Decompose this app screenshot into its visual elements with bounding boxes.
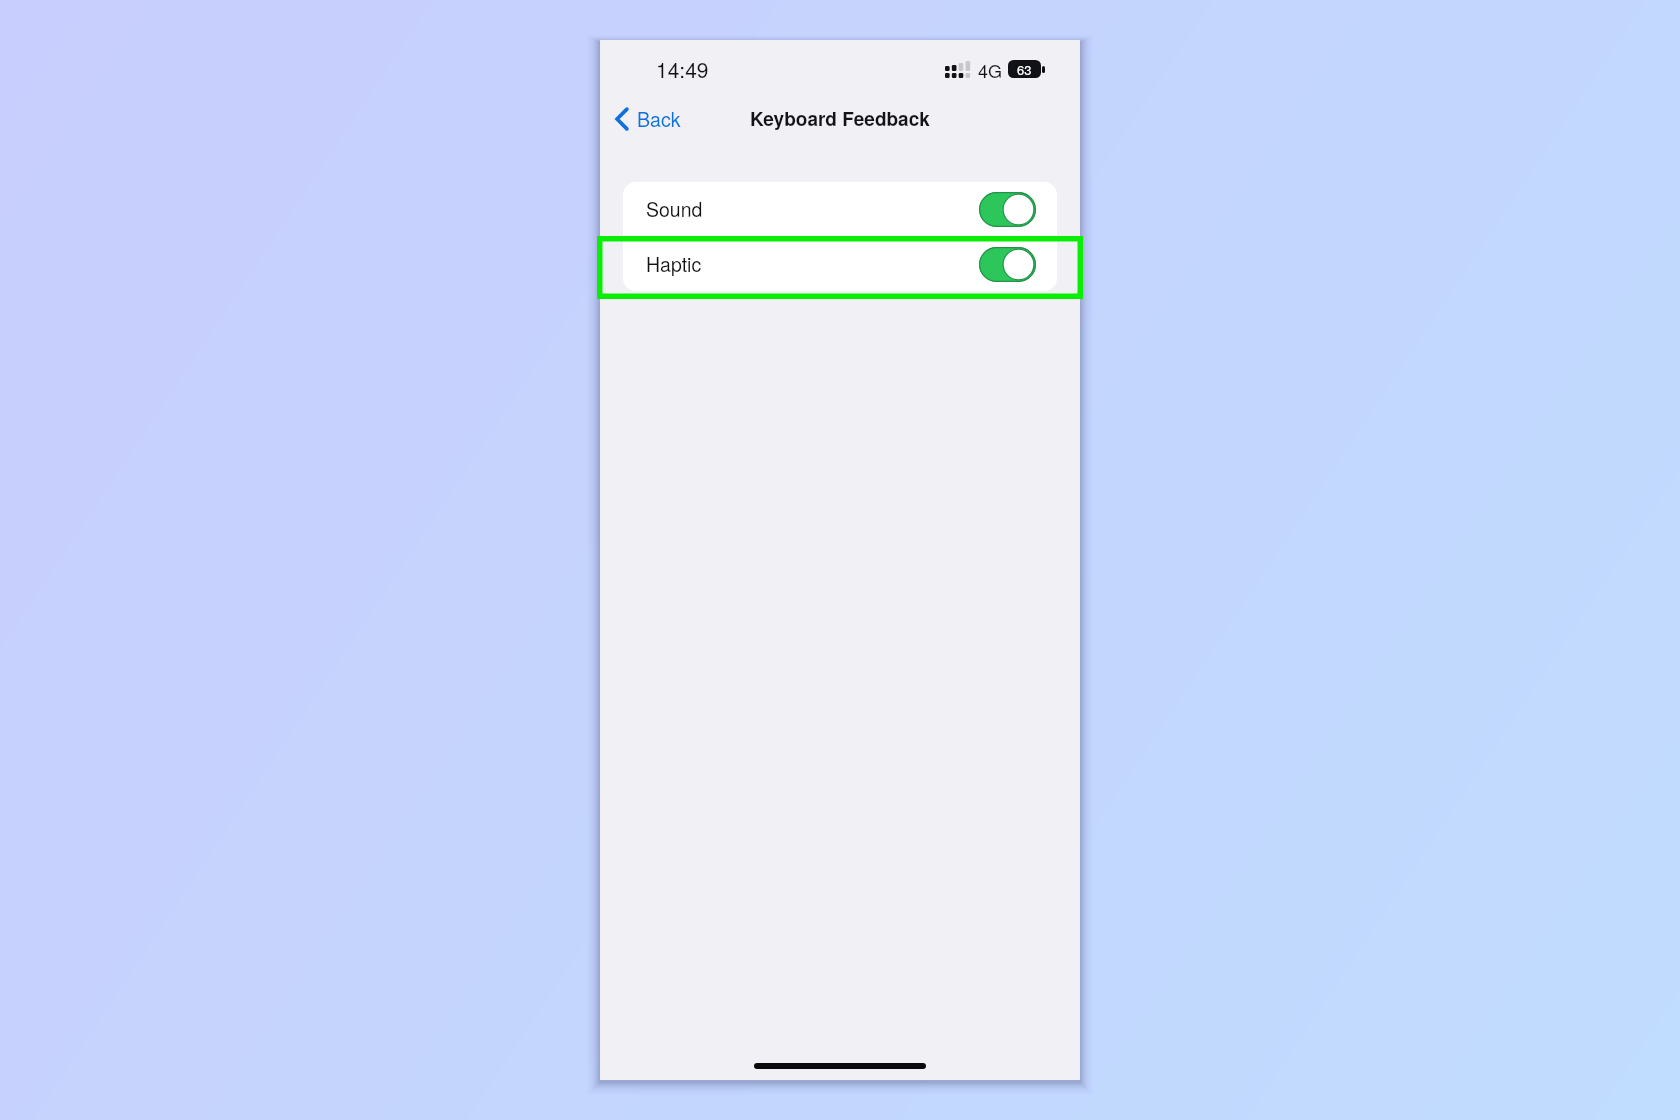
button[interactable]: Back xyxy=(609,100,687,138)
staticText: Back xyxy=(637,104,681,132)
button[interactable]: Sound xyxy=(623,182,1057,236)
button[interactable]: Haptic toggle, on xyxy=(979,247,1036,282)
button[interactable]: Haptic xyxy=(623,237,1057,291)
staticText: 63 xyxy=(1017,60,1032,78)
staticText: Haptic xyxy=(646,250,702,278)
staticText: 14:49 xyxy=(656,54,709,84)
button[interactable]: Sound toggle, on xyxy=(979,192,1036,227)
staticText: Keyboard Feedback xyxy=(750,105,930,132)
staticText: Sound xyxy=(646,195,703,223)
staticText: 4G xyxy=(978,57,1003,83)
